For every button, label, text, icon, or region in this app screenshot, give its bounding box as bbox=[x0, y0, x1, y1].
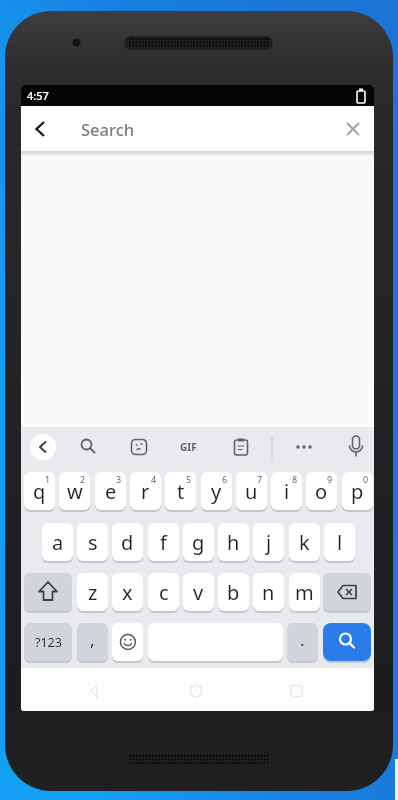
staticText: GIF bbox=[180, 440, 197, 454]
staticText: m bbox=[295, 579, 314, 606]
button[interactable]: n bbox=[253, 573, 284, 611]
button[interactable]: g bbox=[183, 523, 214, 561]
staticText: z bbox=[88, 579, 98, 606]
staticText: k bbox=[299, 529, 310, 556]
staticText: 7 bbox=[257, 473, 263, 485]
staticText: 4 bbox=[151, 473, 157, 485]
staticText: g bbox=[192, 529, 205, 556]
staticText: y bbox=[211, 478, 222, 505]
staticText: u bbox=[245, 478, 258, 505]
staticText: a bbox=[52, 529, 64, 556]
button[interactable] bbox=[339, 115, 367, 143]
staticText: 9 bbox=[327, 473, 333, 485]
button[interactable]: w bbox=[59, 472, 90, 510]
staticText: , bbox=[90, 628, 95, 651]
staticText: . bbox=[300, 628, 305, 651]
staticText: c bbox=[159, 579, 169, 606]
staticText: x bbox=[122, 579, 133, 606]
button[interactable]: b bbox=[218, 573, 249, 611]
button[interactable] bbox=[25, 114, 55, 144]
button[interactable] bbox=[227, 433, 255, 461]
button[interactable] bbox=[125, 433, 153, 461]
staticText: 4:57 bbox=[27, 88, 49, 103]
button[interactable]: ?123 bbox=[24, 623, 72, 661]
button[interactable]: l bbox=[324, 523, 355, 561]
button[interactable]: y bbox=[201, 472, 232, 510]
staticText: 8 bbox=[292, 473, 298, 485]
button[interactable] bbox=[282, 676, 312, 706]
button[interactable]: h bbox=[218, 523, 249, 561]
button[interactable]: e bbox=[95, 472, 126, 510]
button[interactable]: o bbox=[306, 472, 337, 510]
staticText: r bbox=[141, 478, 150, 505]
button[interactable]: p bbox=[342, 472, 373, 510]
button[interactable] bbox=[74, 433, 102, 461]
staticText: p bbox=[351, 478, 364, 505]
button[interactable] bbox=[78, 676, 108, 706]
staticText: b bbox=[227, 579, 240, 606]
button[interactable]: d bbox=[112, 523, 143, 561]
button[interactable]: a bbox=[42, 523, 73, 561]
staticText: 0 bbox=[363, 473, 369, 485]
staticText: s bbox=[88, 529, 98, 556]
button[interactable] bbox=[323, 623, 371, 661]
button[interactable] bbox=[175, 433, 203, 461]
button[interactable] bbox=[24, 573, 72, 611]
button[interactable]: r bbox=[130, 472, 161, 510]
button[interactable]: i bbox=[271, 472, 302, 510]
button[interactable]: f bbox=[148, 523, 179, 561]
staticText: Search bbox=[81, 118, 135, 140]
staticText: q bbox=[33, 478, 46, 505]
button[interactable]: t bbox=[165, 472, 196, 510]
staticText: e bbox=[105, 478, 117, 505]
button[interactable]: v bbox=[183, 573, 214, 611]
button[interactable]: m bbox=[289, 573, 320, 611]
staticText: i bbox=[284, 478, 290, 505]
button[interactable] bbox=[290, 433, 318, 461]
staticText: j bbox=[266, 529, 272, 556]
staticText: ?123 bbox=[35, 634, 62, 651]
staticText: f bbox=[160, 529, 167, 556]
staticText: l bbox=[337, 529, 343, 556]
staticText: n bbox=[262, 579, 275, 606]
button[interactable] bbox=[112, 623, 143, 661]
button[interactable]: k bbox=[289, 523, 320, 561]
staticText: 3 bbox=[116, 473, 122, 485]
button[interactable] bbox=[342, 433, 370, 461]
button[interactable]: x bbox=[112, 573, 143, 611]
button[interactable]: j bbox=[253, 523, 284, 561]
button[interactable]: c bbox=[148, 573, 179, 611]
staticText: o bbox=[315, 478, 328, 505]
button[interactable] bbox=[181, 676, 211, 706]
button[interactable]: z bbox=[77, 573, 108, 611]
button[interactable] bbox=[29, 433, 57, 461]
staticText: d bbox=[121, 529, 134, 556]
button[interactable]: . bbox=[287, 623, 318, 661]
button[interactable]: s bbox=[77, 523, 108, 561]
staticText: 6 bbox=[222, 473, 228, 485]
staticText: w bbox=[67, 478, 83, 505]
button[interactable]: q bbox=[24, 472, 55, 510]
button[interactable]: u bbox=[236, 472, 267, 510]
button[interactable]: , bbox=[77, 623, 108, 661]
staticText: h bbox=[227, 529, 240, 556]
staticText: 5 bbox=[186, 473, 192, 485]
staticText: v bbox=[193, 579, 204, 606]
staticText: t bbox=[177, 478, 185, 505]
button[interactable] bbox=[323, 573, 371, 611]
staticText: 2 bbox=[80, 473, 86, 485]
staticText: 1 bbox=[45, 473, 51, 485]
